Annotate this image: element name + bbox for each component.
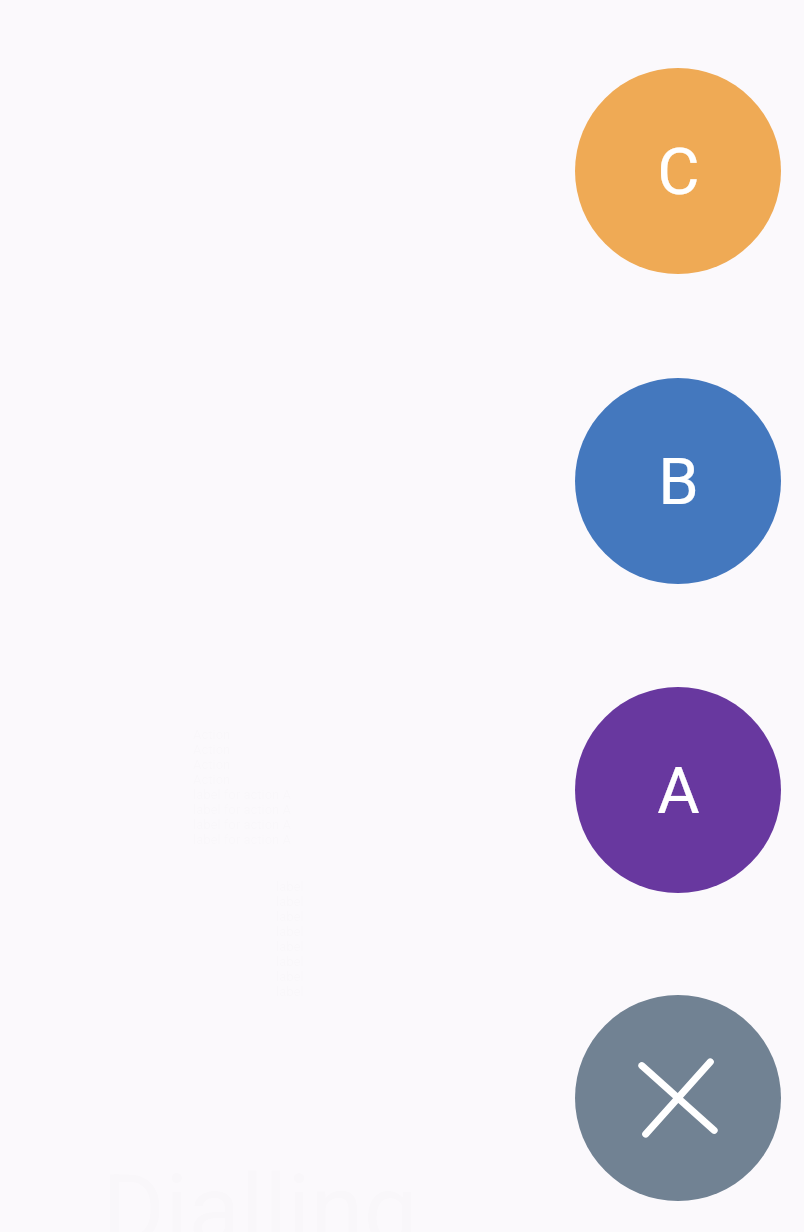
staticText: C: [657, 134, 700, 210]
staticText: B: [658, 444, 699, 520]
button[interactable]: Close menu: [575, 995, 781, 1201]
button[interactable]: Action B: [575, 378, 781, 584]
button[interactable]: Action C: [575, 68, 781, 274]
button[interactable]: Action A: [575, 687, 781, 893]
staticText: A: [657, 753, 700, 829]
